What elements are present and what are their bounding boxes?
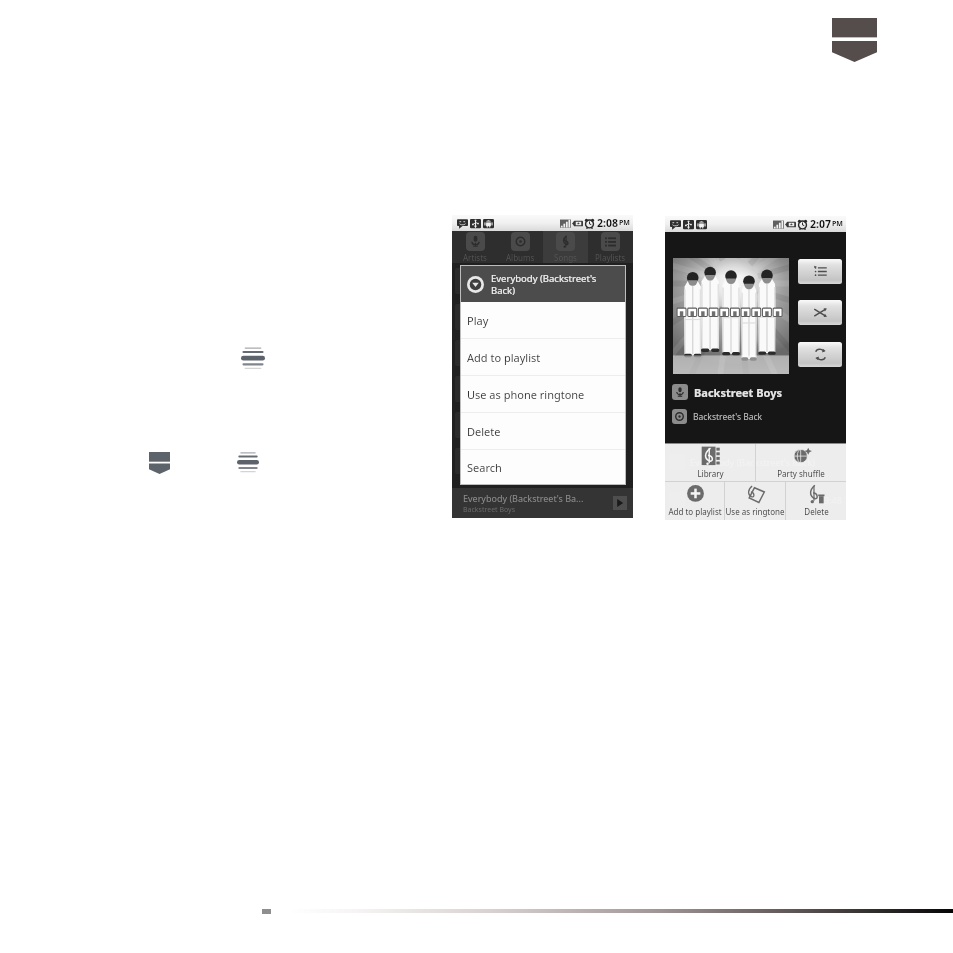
button[interactable]: Use as phone ringtone	[461, 376, 625, 413]
staticText: Play	[467, 313, 489, 328]
staticText: Add to playlist	[467, 350, 541, 365]
button[interactable]: AMAZING GRACE (05)	[452, 263, 633, 299]
staticText: Use as phone ringtone	[467, 387, 585, 402]
staticText: Songs	[554, 252, 577, 263]
staticText: Everybody (Backstreet's Ba...	[463, 492, 584, 504]
staticText: 2:08	[597, 216, 618, 230]
button[interactable]: Track 4	[452, 371, 633, 407]
button[interactable]: Play	[613, 496, 627, 510]
button[interactable]: Everybody (Backstreet's Ba...	[463, 488, 627, 518]
button[interactable]: Bookmark	[832, 18, 877, 62]
button[interactable]: Use as ringtone	[725, 482, 785, 520]
button[interactable]: Delete	[461, 413, 625, 450]
staticText: Backstreet Boys	[486, 391, 539, 401]
staticText: AMAZING GRACE (05)	[486, 269, 587, 283]
button[interactable]: Playlists	[588, 231, 633, 263]
button[interactable]: Album art: Millennium	[673, 258, 789, 374]
button[interactable]: Backstreet's Back	[672, 409, 763, 424]
button[interactable]: Add to playlist	[665, 482, 724, 520]
button[interactable]: Layers	[241, 345, 265, 372]
button[interactable]: Artists	[452, 231, 498, 263]
staticText: Backstreet Boys	[486, 319, 539, 329]
staticText: Backstreet Boys	[486, 355, 539, 365]
staticText: Backstreet Boys	[486, 427, 539, 437]
staticText: PM	[832, 219, 843, 229]
button[interactable]: Playlist	[798, 259, 842, 284]
button[interactable]: Albums	[498, 231, 543, 263]
staticText: Track 3	[486, 341, 520, 355]
button[interactable]: Track 5	[452, 407, 633, 443]
staticText: 2:07	[810, 217, 831, 231]
staticText: Backstreet Boys	[486, 283, 539, 293]
staticText: Backstreet Boys	[694, 385, 782, 400]
button[interactable]: Add to playlist	[461, 339, 625, 376]
staticText: Library	[697, 468, 724, 479]
button[interactable]: Search	[461, 450, 625, 484]
staticText: PM	[619, 218, 630, 228]
staticText: Party shuffle	[777, 468, 825, 479]
button[interactable]: Backstreet Boys	[672, 384, 782, 400]
button[interactable]: Repeat	[798, 342, 842, 367]
staticText: Artists	[463, 252, 487, 263]
staticText: Backstreet Boys	[486, 463, 539, 473]
button[interactable]: Songs	[543, 231, 588, 263]
staticText: Playlists	[595, 252, 626, 263]
button[interactable]: Shuffle	[798, 300, 842, 325]
button[interactable]: Delete	[786, 482, 846, 520]
staticText: Use as ringtone	[725, 506, 785, 517]
staticText: Track 6	[486, 449, 520, 463]
staticText: Search	[467, 460, 502, 475]
button[interactable]: Layers	[237, 450, 259, 475]
staticText: Delete	[467, 424, 501, 439]
staticText: Everybody (Backstreet's Back)	[491, 272, 597, 297]
button[interactable]: Track 2	[452, 299, 633, 335]
staticText: Backstreet's Back	[693, 411, 763, 423]
staticText: 3:48	[824, 494, 842, 506]
button[interactable]: Track 3	[452, 335, 633, 371]
button[interactable]: Party shuffle	[756, 444, 846, 481]
button[interactable]: Bookmark	[149, 452, 170, 474]
staticText: Add to playlist	[668, 506, 722, 517]
button[interactable]: Play	[461, 302, 625, 339]
staticText: Delete	[804, 506, 829, 517]
staticText: Everybody (Backstreet's Back)	[690, 456, 815, 468]
button[interactable]: Library	[665, 444, 755, 481]
staticText: Albums	[506, 252, 535, 263]
staticText: Backstreet Boys	[463, 505, 516, 515]
button[interactable]: Track 6	[452, 443, 633, 479]
